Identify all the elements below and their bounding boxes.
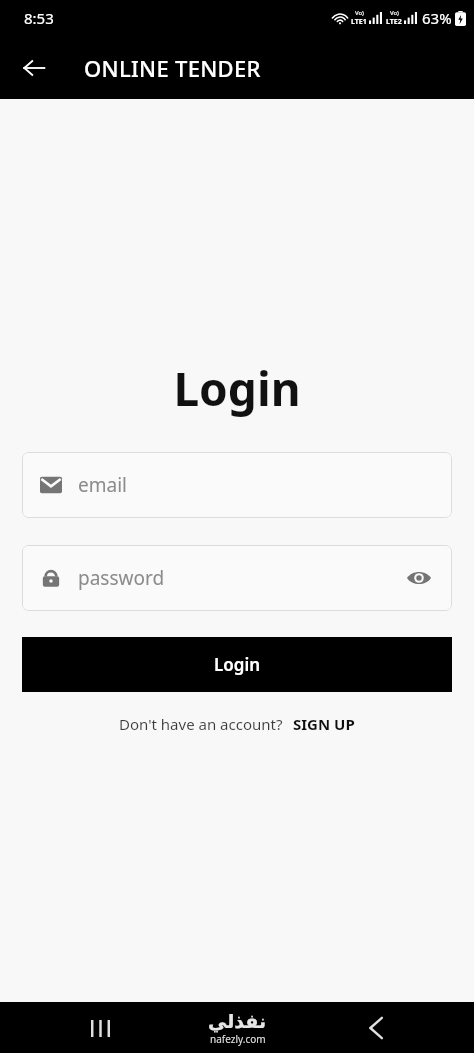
button[interactable]: Back bbox=[14, 48, 54, 88]
staticText: ONLINE TENDER bbox=[84, 53, 261, 83]
button[interactable]: Back bbox=[354, 1006, 398, 1050]
staticText: LTE2 bbox=[386, 17, 402, 27]
staticText: SIGN UP bbox=[293, 714, 355, 734]
staticText: email bbox=[78, 472, 127, 498]
staticText: Vo) bbox=[390, 9, 399, 17]
staticText: Login bbox=[173, 357, 301, 420]
staticText: 8:53 bbox=[24, 8, 54, 28]
button[interactable]: Show password bbox=[402, 561, 436, 595]
button[interactable]: Login bbox=[22, 637, 452, 692]
staticText: نفذلي bbox=[208, 1010, 267, 1032]
staticText: Don't have an account? bbox=[119, 714, 283, 734]
staticText: 63% bbox=[422, 8, 452, 28]
staticText: nafezly.com bbox=[210, 1032, 266, 1046]
staticText: password bbox=[78, 565, 165, 591]
button[interactable]: Recents bbox=[78, 1006, 122, 1050]
staticText: LTE1 bbox=[351, 17, 367, 27]
button[interactable]: password bbox=[22, 545, 452, 611]
staticText: Vo) bbox=[355, 9, 364, 17]
staticText: Login bbox=[214, 653, 261, 676]
button[interactable]: email bbox=[22, 452, 452, 518]
button[interactable]: SIGN UP bbox=[293, 714, 355, 734]
